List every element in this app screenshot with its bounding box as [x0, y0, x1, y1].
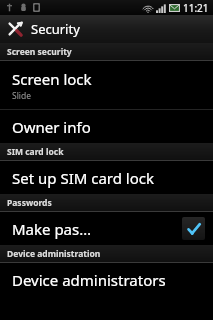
staticText: Screen security [7, 46, 72, 58]
staticText: Make passwords visible [12, 219, 97, 239]
staticText: Slide [12, 90, 32, 102]
button[interactable]: Screen lock [0, 61, 213, 109]
staticText: Passwords [7, 197, 52, 209]
staticText: Device administration [7, 248, 101, 260]
button[interactable]: Set up SIM card lock [0, 161, 213, 194]
staticText: Set up SIM card lock [12, 168, 155, 188]
staticText: Screen lock [12, 69, 92, 89]
button[interactable]: Security [0, 15, 213, 43]
staticText: Security [31, 20, 80, 38]
staticText: Owner info [12, 117, 91, 137]
staticText: 11:21 [183, 1, 209, 15]
button[interactable]: Device administrators [0, 263, 213, 296]
other: Make passwords visible [182, 217, 205, 240]
staticText: Device administrators [12, 270, 166, 290]
button[interactable]: Owner info [0, 110, 213, 143]
button[interactable]: Make passwords visible [0, 212, 213, 245]
staticText: SIM card lock [7, 146, 64, 158]
